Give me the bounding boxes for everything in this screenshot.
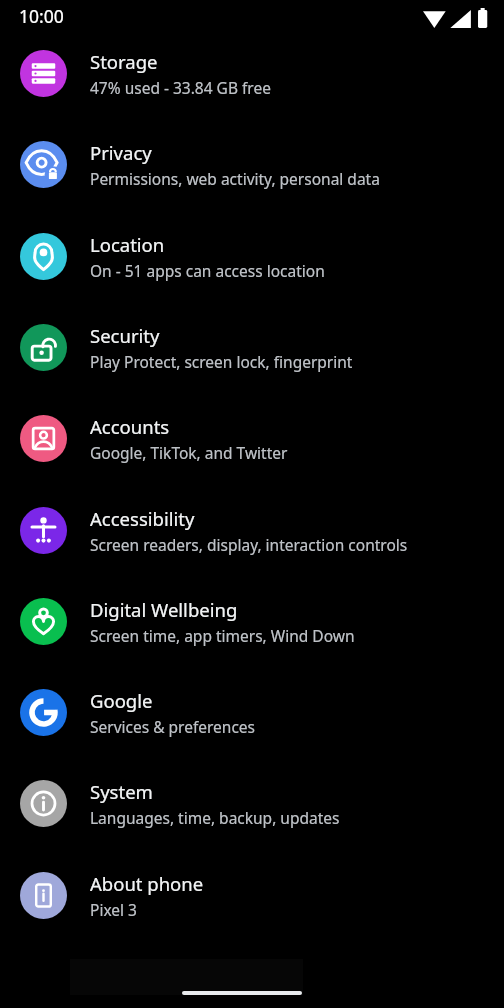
staticText: Accessibility [90, 506, 195, 531]
staticText: Services & preferences [90, 716, 255, 737]
staticText: Screen time, app timers, Wind Down [90, 625, 355, 646]
button[interactable]: Accessibility [0, 485, 504, 575]
staticText: On - 51 apps can access location [90, 260, 325, 281]
staticText: Pixel 3 [90, 899, 137, 920]
staticText: About phone [90, 871, 204, 896]
button[interactable]: Privacy [0, 119, 504, 209]
staticText: System [90, 779, 153, 804]
staticText: Permissions, web activity, personal data [90, 168, 380, 189]
staticText: Play Protect, screen lock, fingerprint [90, 351, 353, 372]
button[interactable]: Storage [0, 28, 504, 118]
staticText: Location [90, 232, 165, 257]
staticText: 47% used - 33.84 GB free [90, 77, 271, 98]
staticText: 10:00 [19, 4, 64, 28]
staticText: Accounts [90, 414, 170, 439]
button[interactable]: System [0, 758, 504, 848]
staticText: Google, TikTok, and Twitter [90, 442, 288, 463]
staticText: Screen readers, display, interaction con… [90, 534, 408, 555]
staticText: Privacy [90, 140, 152, 165]
button[interactable]: Accounts [0, 393, 504, 483]
button[interactable]: Location [0, 211, 504, 301]
button[interactable]: Digital Wellbeing [0, 576, 504, 666]
button[interactable]: About phone [0, 850, 504, 940]
button[interactable]: Security [0, 302, 504, 392]
staticText: Security [90, 323, 160, 348]
staticText: Languages, time, backup, updates [90, 807, 340, 828]
button[interactable]: Google [0, 667, 504, 757]
staticText: Storage [90, 49, 158, 74]
staticText: Google [90, 688, 153, 713]
staticText: Digital Wellbeing [90, 597, 238, 622]
